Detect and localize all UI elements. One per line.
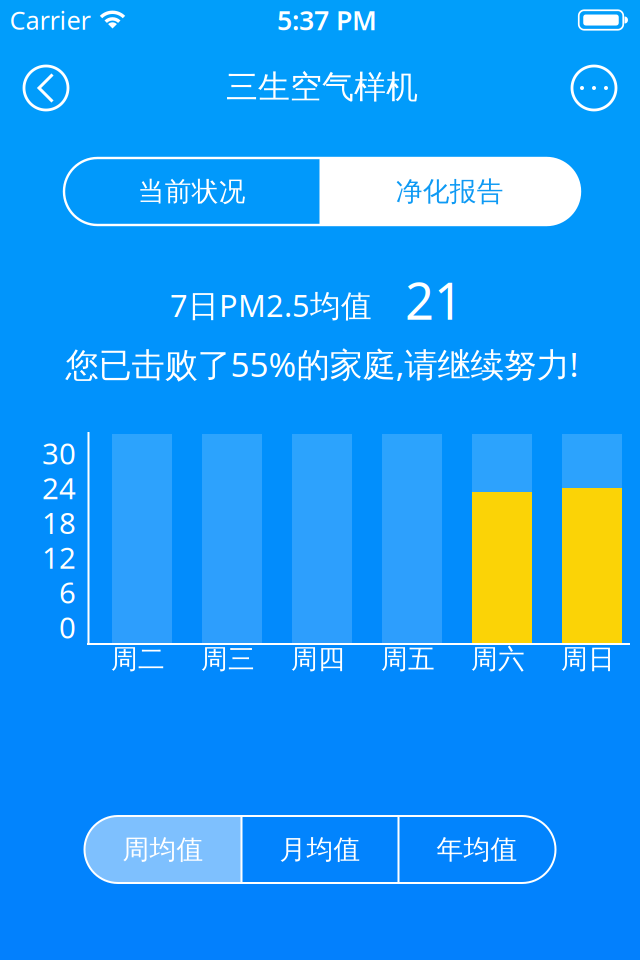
staticText: 18 bbox=[42, 503, 76, 542]
button[interactable]: 净化报告 bbox=[319, 158, 580, 225]
staticText: 年均值 bbox=[436, 833, 517, 866]
staticText: 净化报告 bbox=[396, 175, 504, 208]
button[interactable]: 月均值 bbox=[241, 816, 398, 883]
staticText: Carrier bbox=[9, 3, 90, 37]
staticText: 周六 bbox=[471, 643, 525, 675]
staticText: 21 bbox=[405, 266, 463, 334]
staticText: 月均值 bbox=[279, 833, 360, 866]
staticText: 您已击败了55%的家庭,请继续努力! bbox=[65, 342, 578, 386]
staticText: 三生空气样机 bbox=[226, 67, 418, 107]
button[interactable]: 当前状况 bbox=[64, 158, 319, 225]
staticText: 30 bbox=[42, 433, 76, 472]
staticText: 周二 bbox=[111, 643, 165, 675]
staticText: 7日PM2.5均值 bbox=[170, 285, 372, 325]
staticText: 24 bbox=[42, 468, 76, 507]
staticText: 0 bbox=[59, 607, 76, 646]
staticText: 12 bbox=[42, 538, 76, 577]
staticText: 周三 bbox=[201, 643, 255, 675]
button[interactable]: 周均值 bbox=[84, 816, 241, 883]
staticText: 6 bbox=[59, 573, 76, 612]
button[interactable]: More bbox=[571, 65, 617, 111]
staticText: 周五 bbox=[381, 643, 435, 675]
staticText: 周四 bbox=[291, 643, 345, 675]
staticText: 周日 bbox=[561, 643, 615, 675]
button[interactable]: Back bbox=[23, 65, 69, 111]
button[interactable]: 年均值 bbox=[398, 816, 555, 883]
staticText: 5:37 PM bbox=[277, 2, 377, 38]
staticText: 当前状况 bbox=[138, 175, 246, 208]
staticText: 周均值 bbox=[122, 833, 203, 866]
